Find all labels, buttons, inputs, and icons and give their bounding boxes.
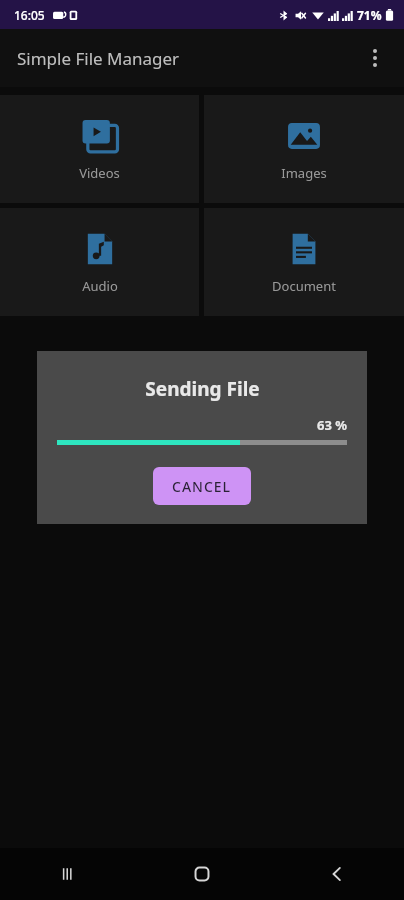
staticText: Sending File — [145, 376, 260, 402]
button[interactable]: Document — [204, 208, 404, 316]
button[interactable]: CANCEL — [153, 467, 251, 505]
staticText: 71% — [357, 7, 382, 23]
staticText: Videos — [79, 164, 120, 182]
button[interactable]: Audio — [0, 208, 199, 316]
staticText: 16:05 — [14, 7, 45, 23]
button[interactable]: Videos — [0, 95, 199, 203]
staticText: 63 % — [317, 416, 347, 434]
button[interactable]: Back — [269, 848, 404, 900]
button[interactable]: Home — [134, 848, 269, 900]
button[interactable]: Images — [204, 95, 404, 203]
staticText: Audio — [82, 277, 118, 295]
staticText: Images — [281, 164, 327, 182]
staticText: Document — [272, 277, 336, 295]
staticText: CANCEL — [172, 477, 232, 496]
button[interactable]: More options — [352, 35, 398, 81]
staticText: Simple File Manager — [17, 47, 180, 70]
button[interactable]: Recent apps — [0, 848, 134, 900]
